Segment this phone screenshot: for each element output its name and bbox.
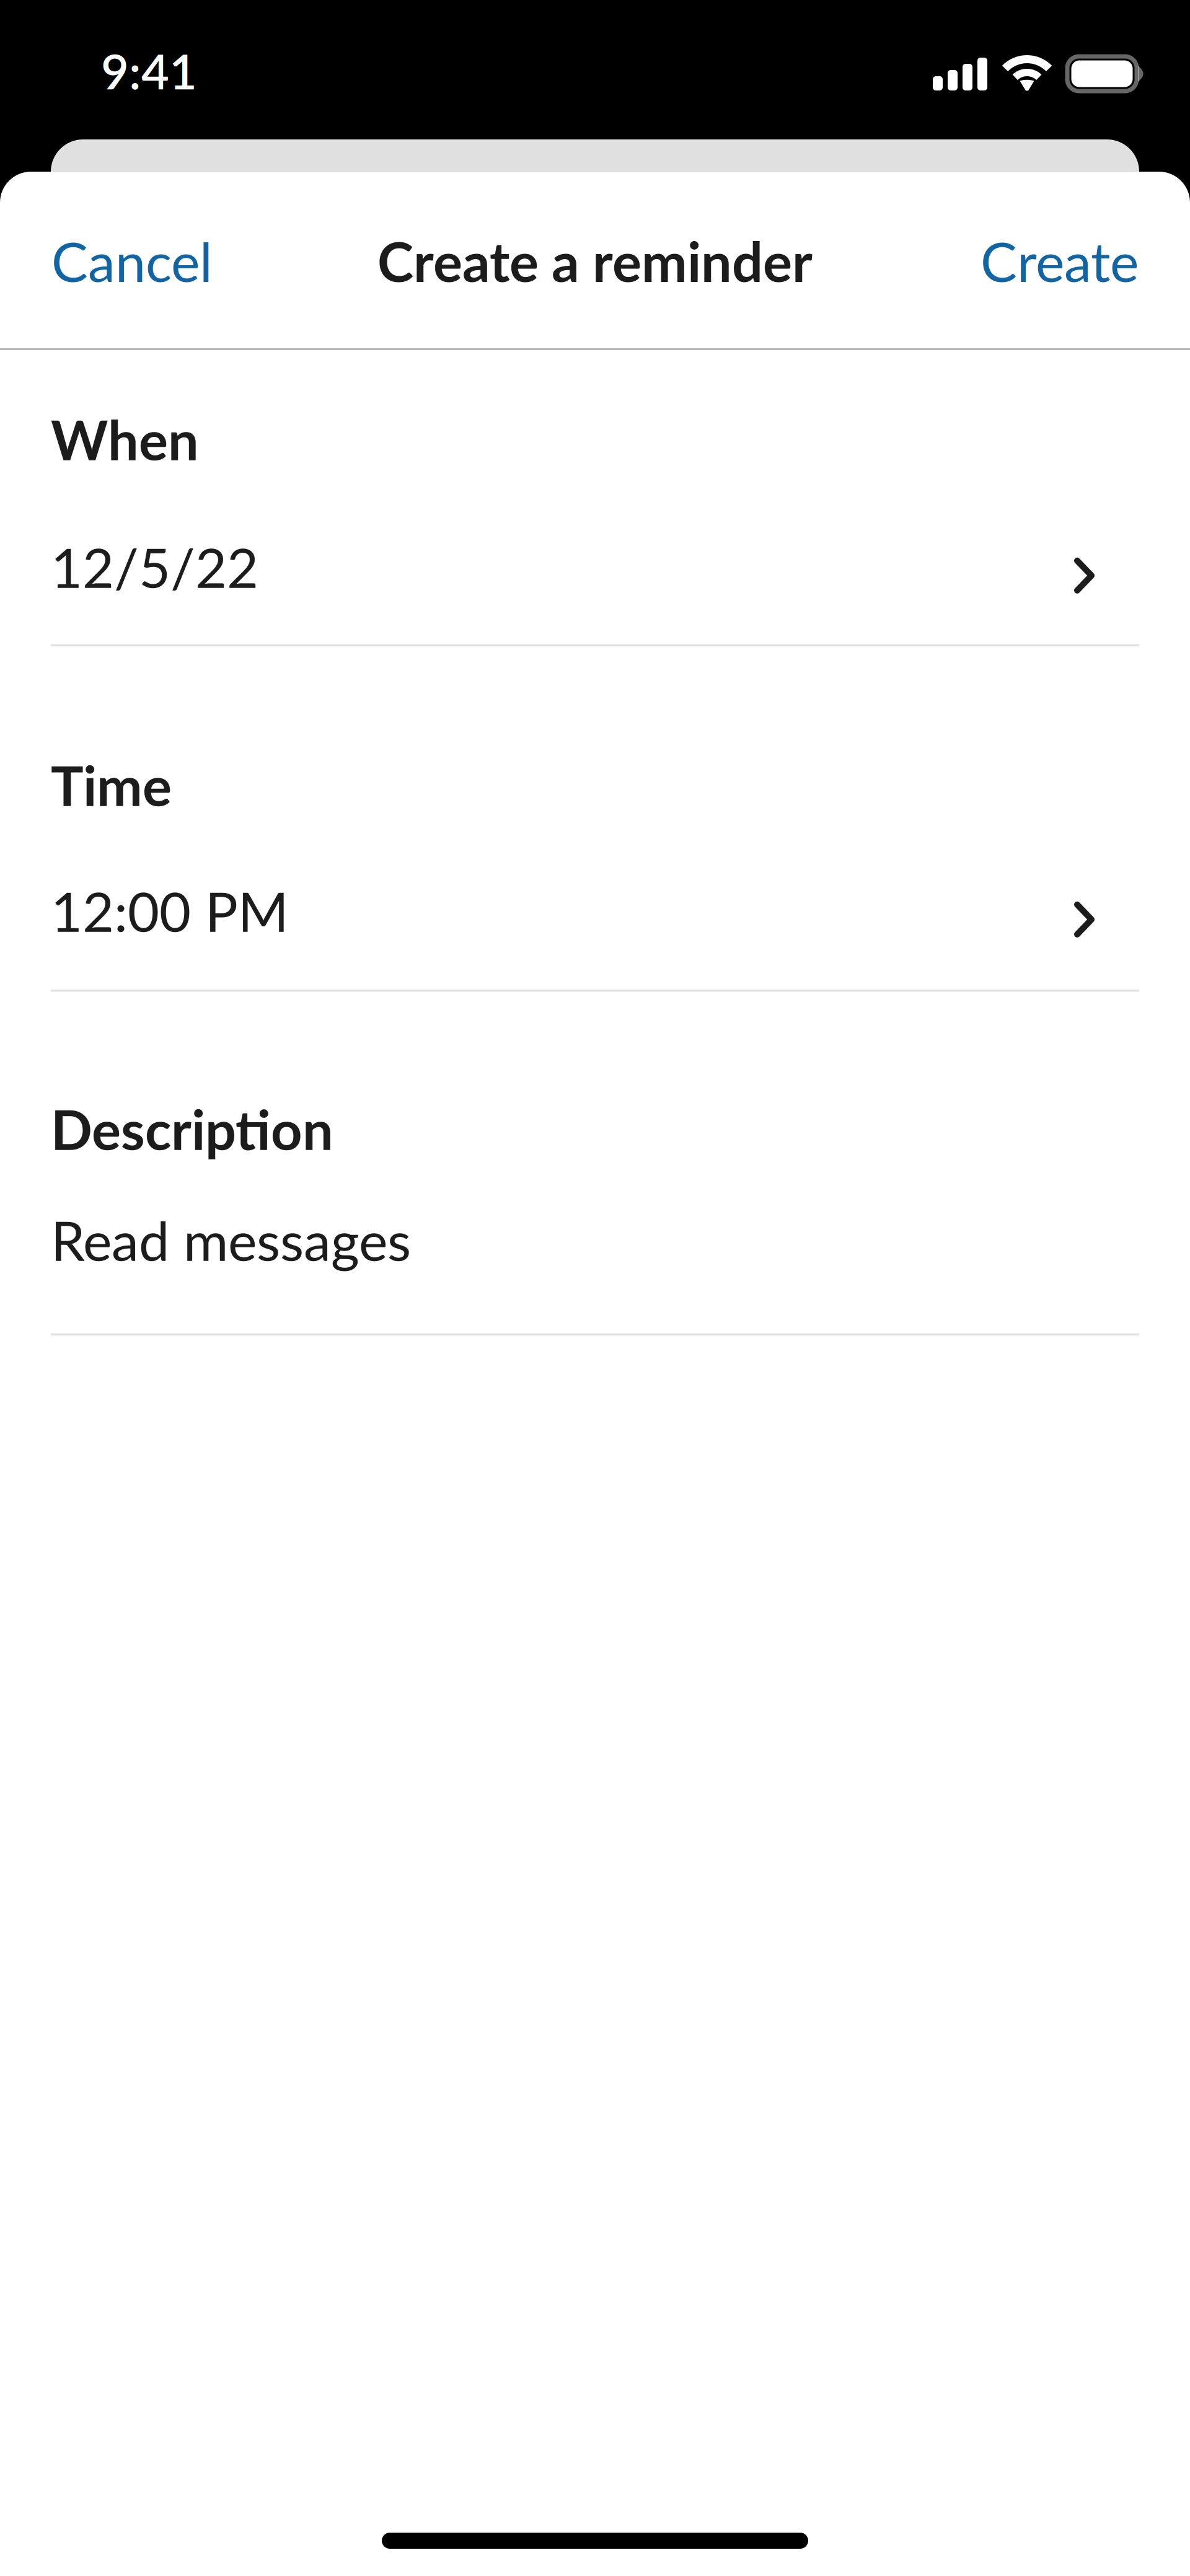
staticText: Description — [51, 1096, 333, 1162]
staticText: Create a reminder — [377, 228, 813, 294]
staticText: Cancel — [51, 228, 213, 294]
staticText: 12:00 PM — [51, 878, 289, 944]
button[interactable]: When — [51, 379, 1139, 646]
button[interactable]: Create — [953, 199, 1139, 323]
button[interactable]: Time — [51, 646, 1139, 991]
staticText: When — [51, 407, 199, 472]
button[interactable]: Cancel — [51, 199, 237, 323]
button[interactable]: Description — [51, 991, 1139, 1335]
staticText: Time — [51, 752, 172, 818]
staticText: Read messages — [51, 1207, 411, 1273]
staticText: 9:41 — [101, 42, 197, 100]
staticText: 12/5/22 — [51, 534, 258, 600]
staticText: Create — [981, 228, 1139, 294]
